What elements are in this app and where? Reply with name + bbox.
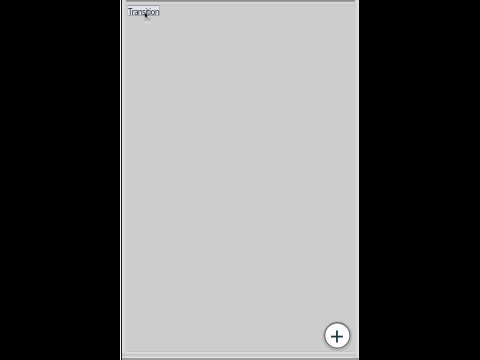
- button[interactable]: Add: [323, 321, 352, 350]
- staticText: Transition: [128, 6, 160, 17]
- button[interactable]: Transition: [127, 5, 160, 16]
